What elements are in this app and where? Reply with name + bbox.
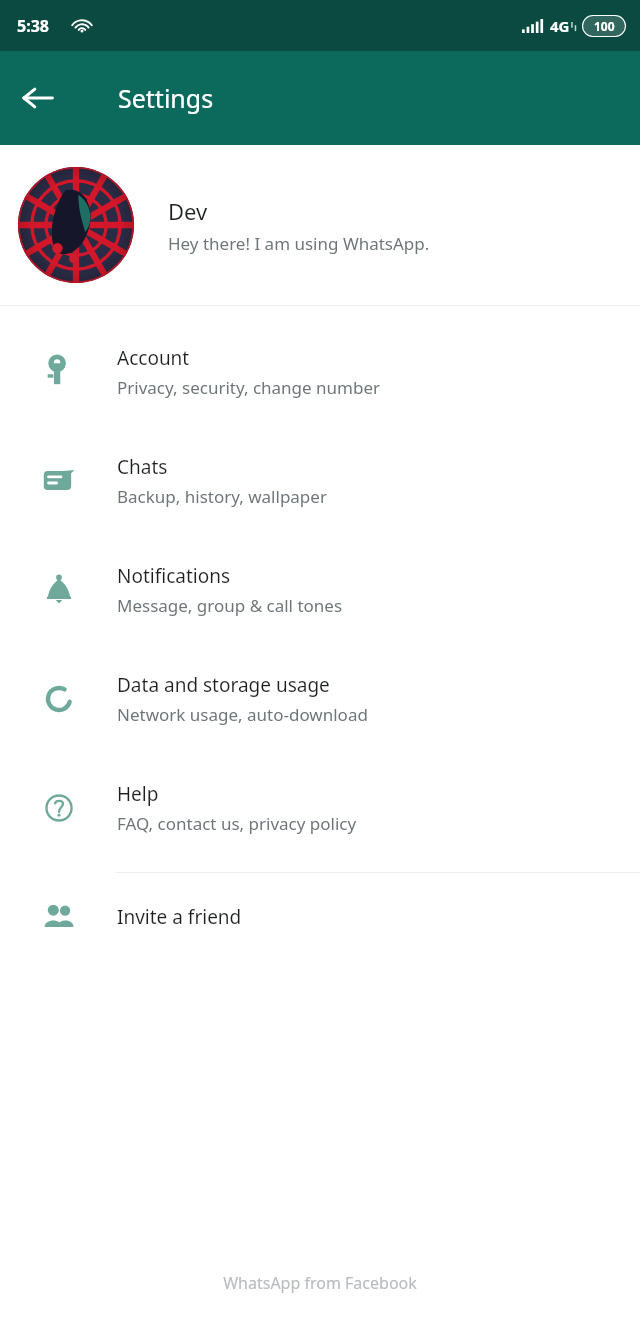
staticText: Backup, history, wallpaper: [117, 485, 327, 508]
staticText: Help: [117, 781, 159, 807]
staticText: Hey there! I am using WhatsApp.: [168, 232, 430, 255]
staticText: Message, group & call tones: [117, 594, 343, 617]
button[interactable]: Help: [0, 753, 640, 862]
staticText: Dev: [168, 196, 208, 226]
staticText: Network usage, auto-download: [117, 703, 368, 726]
button[interactable]: Back: [12, 72, 64, 124]
staticText: FAQ, contact us, privacy policy: [117, 812, 357, 835]
staticText: 5:38: [17, 15, 49, 37]
staticText: Account: [117, 345, 190, 371]
button[interactable]: Account: [0, 317, 640, 426]
staticText: WhatsApp from Facebook: [0, 1272, 640, 1294]
staticText: Data and storage usage: [117, 672, 330, 698]
staticText: Privacy, security, change number: [117, 376, 381, 399]
staticText: 100: [594, 18, 615, 34]
button[interactable]: Chats: [0, 426, 640, 535]
staticText: Notifications: [117, 563, 231, 589]
staticText: Chats: [117, 454, 168, 480]
staticText: 4G: [550, 16, 570, 36]
button[interactable]: Data and storage usage: [0, 644, 640, 753]
staticText: Invite a friend: [117, 904, 242, 930]
button[interactable]: Notifications: [0, 535, 640, 644]
button[interactable]: Invite a friend: [0, 873, 640, 961]
staticText: Settings: [118, 81, 214, 115]
button[interactable]: Dev: [0, 145, 640, 305]
